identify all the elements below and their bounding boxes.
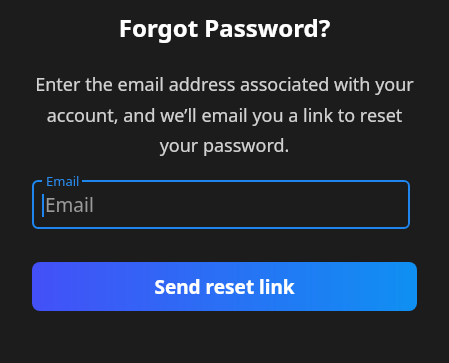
staticText: Send reset link xyxy=(154,274,295,300)
button[interactable]: Send reset link xyxy=(32,262,417,311)
staticText: Email xyxy=(45,192,94,218)
button[interactable]: Email xyxy=(32,180,410,229)
staticText: Enter the email address associated with … xyxy=(26,72,423,157)
staticText: Email xyxy=(46,172,80,190)
staticText: Forgot Password? xyxy=(0,11,449,44)
